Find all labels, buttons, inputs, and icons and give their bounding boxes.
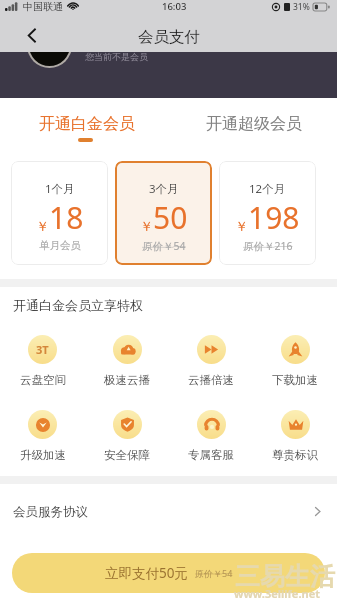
staticText: 50 <box>153 197 188 238</box>
button[interactable]: 升级加速 <box>0 410 85 462</box>
staticText: 立即支付50元 <box>105 564 188 582</box>
staticText: 云盘空间 <box>20 373 66 387</box>
button[interactable]: 12个月 <box>219 161 316 265</box>
staticText: 安全保障 <box>104 448 150 462</box>
staticText: 开通白金会员 <box>39 114 135 134</box>
button[interactable]: 3T <box>0 335 85 387</box>
staticText: 尊贵标识 <box>272 448 318 462</box>
staticText: ￥ <box>140 218 153 234</box>
button[interactable]: 立即支付50元 <box>12 553 325 593</box>
staticText: 下载加速 <box>272 373 318 387</box>
staticText: ￥ <box>235 218 248 234</box>
staticText: 会员服务协议 <box>13 504 88 520</box>
staticText: ￥ <box>36 218 49 234</box>
button[interactable]: 开通超级会员 <box>170 98 337 138</box>
staticText: 三易生活 <box>235 561 335 592</box>
staticText: 升级加速 <box>20 448 66 462</box>
staticText: 专属客服 <box>188 448 234 462</box>
staticText: 18 <box>49 197 84 238</box>
staticText: 31% <box>293 1 310 13</box>
staticText: 云播倍速 <box>188 373 234 387</box>
staticText: 3T <box>36 342 49 357</box>
staticText: 中国联通 <box>23 0 63 13</box>
staticText: 单月会员 <box>39 239 81 252</box>
button[interactable]: 尊贵标识 <box>253 410 337 462</box>
staticText: 12个月 <box>249 181 286 197</box>
button[interactable]: 3个月 <box>115 161 212 265</box>
staticText: 16:03 <box>162 0 187 13</box>
staticText: 开通白金会员立享特权 <box>13 297 143 313</box>
staticText: 198 <box>248 197 300 238</box>
staticText: 极速云播 <box>104 373 150 387</box>
button[interactable]: 开通白金会员 <box>3 98 170 142</box>
button[interactable]: 专属客服 <box>169 410 253 462</box>
button[interactable]: 1个月 <box>11 161 108 265</box>
staticText: 原价￥54 <box>142 239 186 253</box>
staticText: 会员支付 <box>138 27 200 47</box>
button[interactable]: 安全保障 <box>85 410 169 462</box>
staticText: 1个月 <box>45 181 75 197</box>
button[interactable]: 云播倍速 <box>169 335 253 387</box>
button[interactable]: 下载加速 <box>253 335 337 387</box>
button[interactable]: Back <box>23 26 41 44</box>
staticText: 3个月 <box>149 181 179 197</box>
staticText: www.3eliife.net <box>234 586 321 600</box>
staticText: 您当前不是会员 <box>85 52 148 62</box>
button[interactable]: 极速云播 <box>85 335 169 387</box>
staticText: 开通超级会员 <box>206 114 302 134</box>
staticText: 原价￥54 <box>195 567 233 579</box>
button[interactable]: 会员服务协议 <box>0 484 337 539</box>
staticText: 原价￥216 <box>243 239 293 253</box>
